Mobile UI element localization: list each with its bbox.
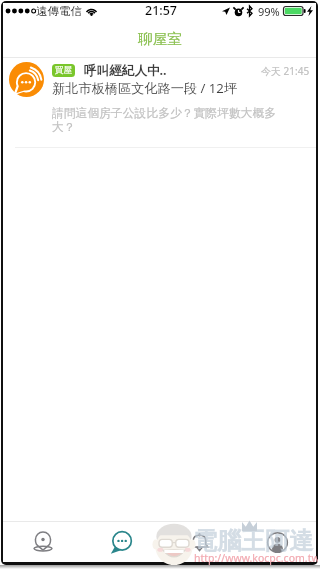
- staticText: 新北市板橋區文化路一段 / 12坪: [52, 79, 238, 97]
- button[interactable]: Profile: [238, 522, 316, 562]
- staticText: http://www.kocpc.com.tw: [194, 551, 318, 565]
- staticText: 99%: [258, 4, 280, 19]
- button[interactable]: Chat: [82, 522, 160, 562]
- staticText: 電腦王阿達: [193, 526, 313, 556]
- staticText: 聊屋室: [138, 30, 182, 48]
- staticText: 遠傳電信: [36, 4, 82, 18]
- staticText: 今天 21:45: [261, 64, 310, 78]
- staticText: 買屋: [55, 65, 72, 76]
- button[interactable]: Nearby: [3, 522, 82, 562]
- button[interactable]: 買屋: [3, 58, 316, 148]
- staticText: 呼叫經紀人中..: [84, 62, 167, 79]
- staticText: 21:57: [145, 2, 178, 19]
- staticText: 請問這個房子公設比多少？實際坪數大概多大？: [52, 106, 282, 135]
- button[interactable]: Notifications: [160, 522, 238, 562]
